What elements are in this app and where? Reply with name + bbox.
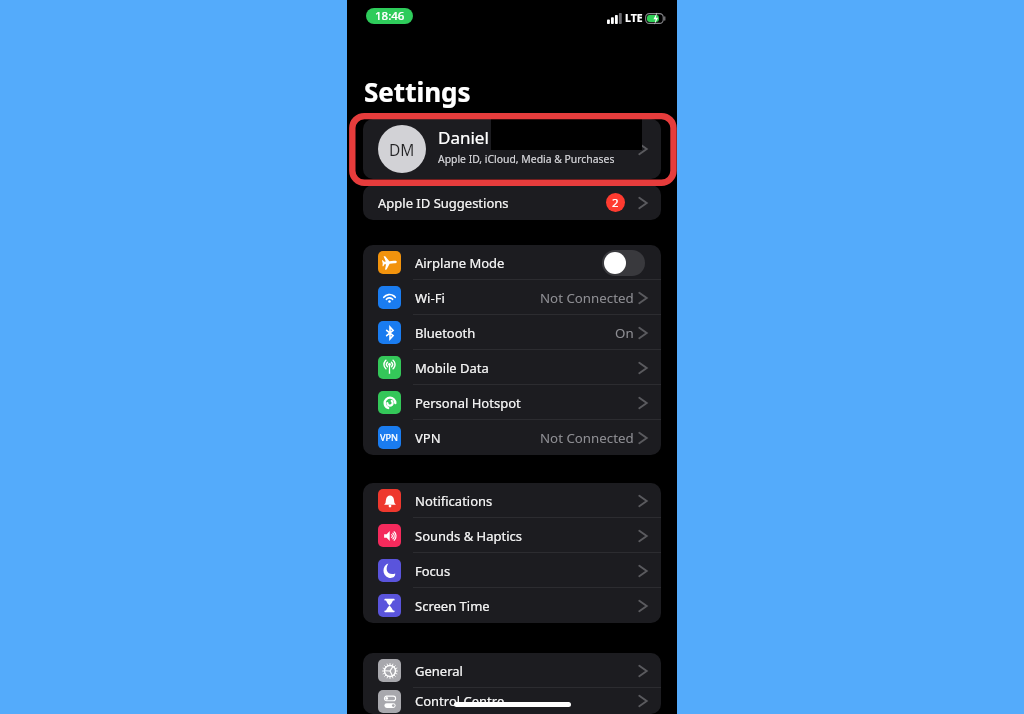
staticText: Daniel: [438, 126, 489, 149]
button[interactable]: DM: [363, 119, 661, 179]
button[interactable]: Airplane Mode toggle: [602, 250, 645, 276]
button[interactable]: Focus: [363, 553, 661, 588]
button[interactable]: Bluetooth: [363, 315, 661, 350]
button[interactable]: Wi-Fi: [363, 280, 661, 315]
staticText: Not Connected: [540, 289, 634, 307]
button[interactable]: VPN: [363, 420, 661, 455]
staticText: Airplane Mode: [415, 254, 505, 272]
button[interactable]: Screen Time: [363, 588, 661, 623]
staticText: Personal Hotspot: [415, 394, 521, 412]
staticText: LTE: [625, 11, 643, 25]
staticText: Notifications: [415, 492, 493, 510]
staticText: VPN: [415, 429, 441, 447]
staticText: Mobile Data: [415, 359, 489, 377]
staticText: General: [415, 662, 463, 680]
staticText: Wi-Fi: [415, 289, 445, 307]
staticText: Settings: [364, 74, 471, 109]
button[interactable]: General: [363, 653, 661, 688]
button[interactable]: Control Centre: [363, 688, 661, 714]
button[interactable]: Airplane Mode: [363, 245, 661, 280]
button[interactable]: Mobile Data: [363, 350, 661, 385]
staticText: Apple ID, iCloud, Media & Purchases: [438, 152, 615, 166]
staticText: Focus: [415, 562, 451, 580]
button[interactable]: Sounds & Haptics: [363, 518, 661, 553]
staticText: 18:46: [375, 8, 405, 24]
staticText: Screen Time: [415, 597, 490, 615]
staticText: Sounds & Haptics: [415, 527, 523, 545]
staticText: Control Centre: [415, 692, 505, 710]
staticText: 2: [612, 195, 619, 211]
button[interactable]: Notifications: [363, 483, 661, 518]
staticText: Apple ID Suggestions: [378, 194, 509, 212]
button[interactable]: Apple ID Suggestions: [363, 185, 661, 220]
staticText: Not Connected: [540, 429, 634, 447]
staticText: VPN: [380, 431, 399, 444]
staticText: DM: [389, 139, 415, 160]
staticText: On: [615, 324, 634, 342]
staticText: Bluetooth: [415, 324, 476, 342]
button[interactable]: Personal Hotspot: [363, 385, 661, 420]
